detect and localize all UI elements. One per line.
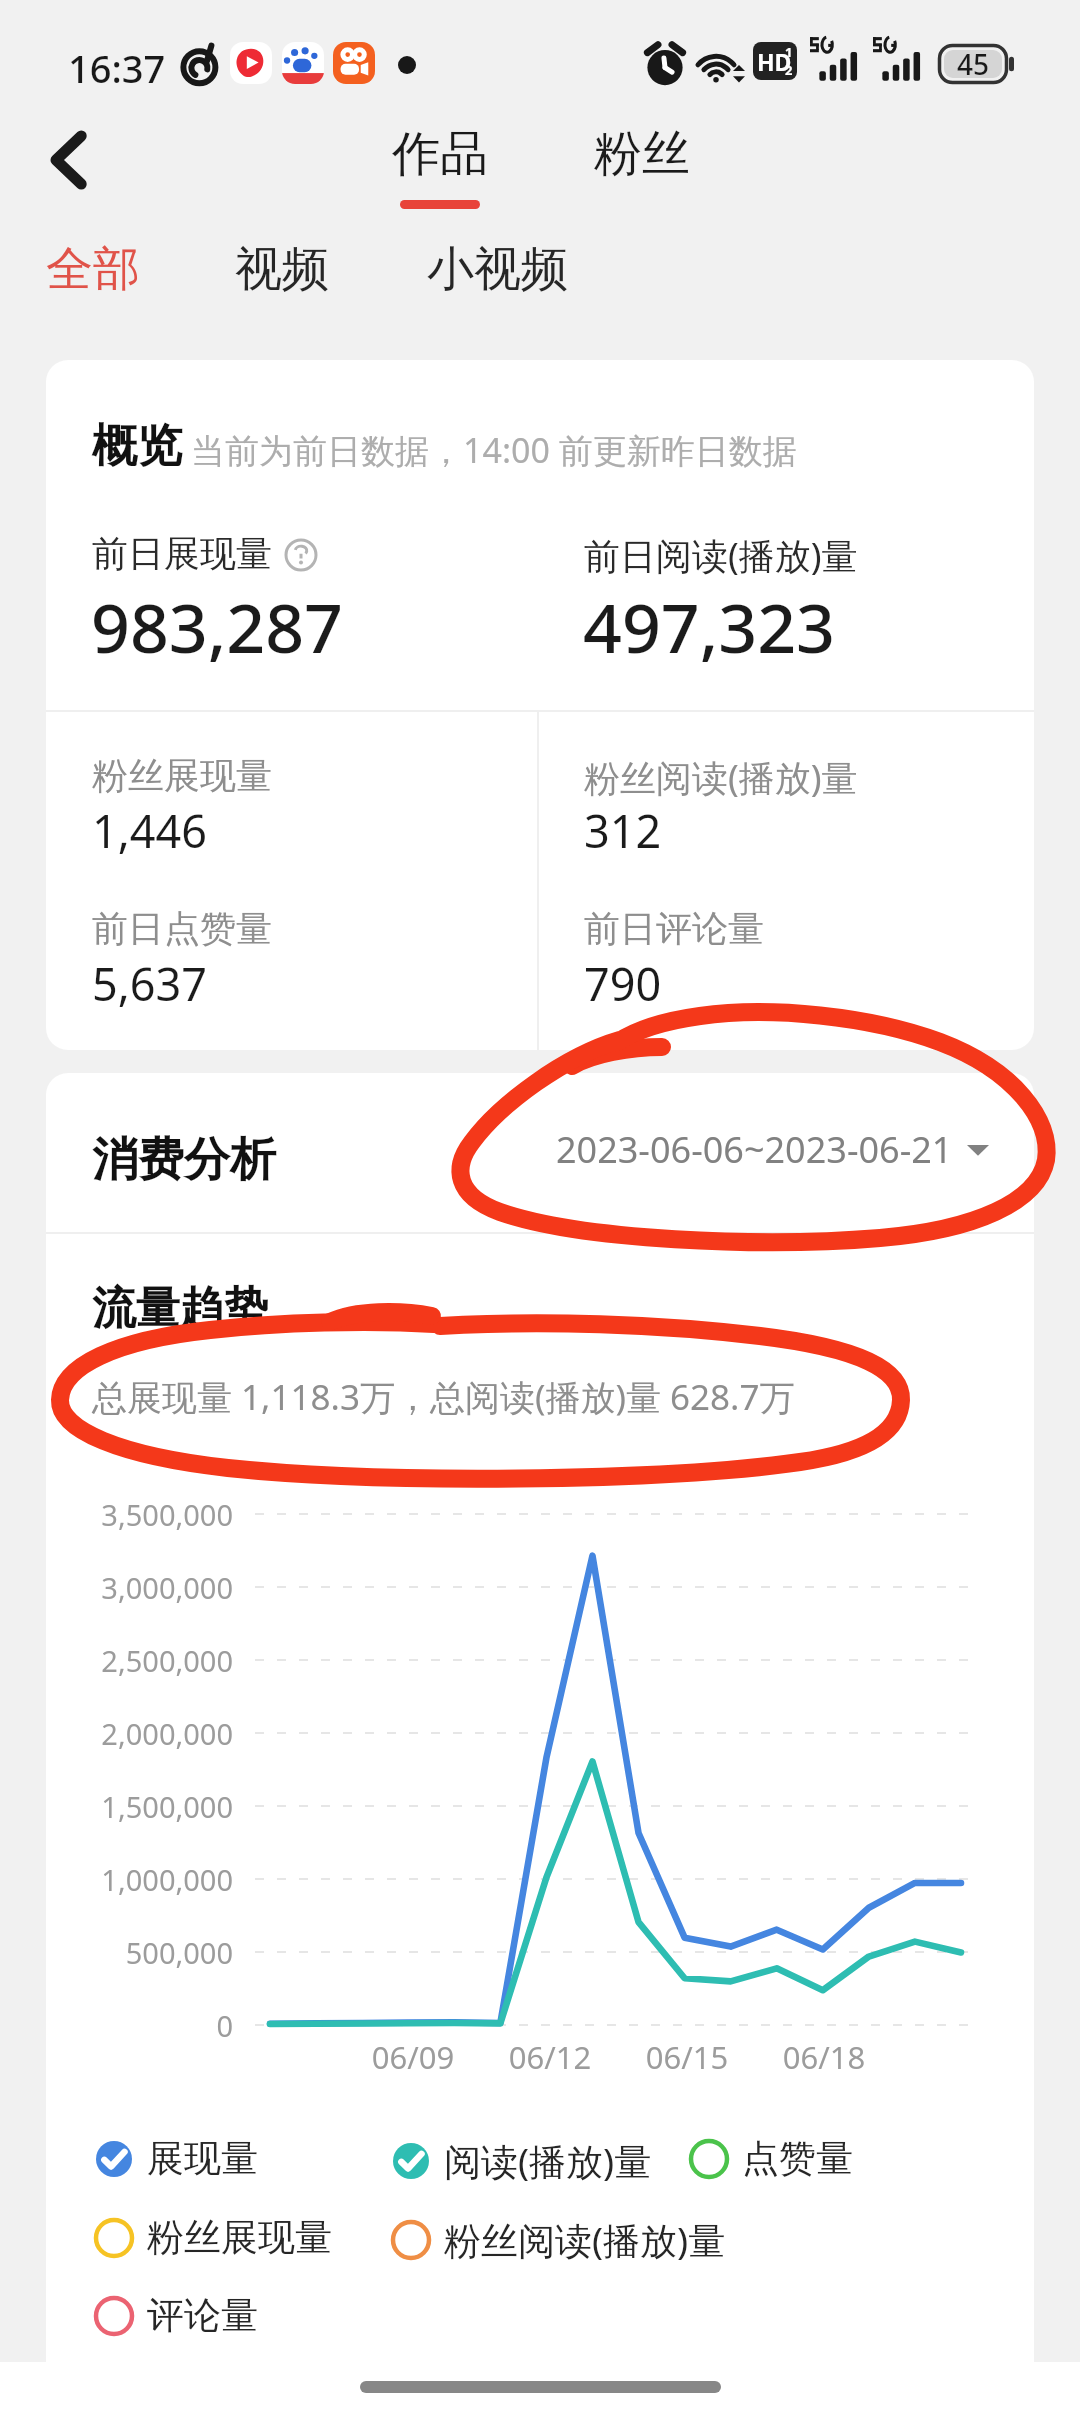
staticText: 当前为前日数据，14:00 前更新昨日数据 xyxy=(191,427,797,473)
button[interactable]: 视频 xyxy=(235,240,329,299)
button[interactable]: 阅读(播放)量 xyxy=(390,2135,652,2186)
staticText: 全部 xyxy=(46,240,140,299)
staticText: HD xyxy=(757,46,792,77)
button[interactable]: 粉丝展现量 xyxy=(93,2214,332,2261)
staticText: 983,287 xyxy=(91,580,343,673)
staticText: 展现量 xyxy=(147,2135,258,2182)
button[interactable]: Back xyxy=(38,128,102,192)
button[interactable]: 作品 xyxy=(390,124,490,224)
button[interactable]: 粉丝 xyxy=(592,124,692,194)
staticText: 总展现量 1,118.3万，总阅读(播放)量 628.7万 xyxy=(92,1373,795,1421)
staticText: 2,500,000 xyxy=(46,1641,233,1680)
staticText: 45 xyxy=(957,45,990,83)
staticText: 2,000,000 xyxy=(46,1714,233,1753)
staticText: 0 xyxy=(46,2006,233,2045)
staticText: 粉丝阅读(播放)量 xyxy=(584,753,858,802)
staticText: 粉丝阅读(播放)量 xyxy=(444,2214,726,2265)
staticText: 小视频 xyxy=(427,240,568,299)
staticText: 前日阅读(播放)量 xyxy=(584,531,858,580)
staticText: 06/09 xyxy=(353,2036,473,2078)
staticText: 粉丝展现量 xyxy=(147,2214,332,2261)
staticText: 前日展现量 xyxy=(92,531,272,576)
staticText: 作品 xyxy=(392,124,488,184)
staticText: 3,000,000 xyxy=(46,1568,233,1607)
button[interactable]: 粉丝阅读(播放)量 xyxy=(390,2214,726,2265)
staticText: 前日点赞量 xyxy=(92,906,272,951)
staticText: 评论量 xyxy=(147,2292,258,2339)
staticText: 312 xyxy=(584,800,662,861)
button[interactable]: 2023-06-06~2023-06-21 xyxy=(556,1125,989,1174)
button[interactable]: 全部 xyxy=(46,240,140,299)
staticText: 1,000,000 xyxy=(46,1860,233,1899)
staticText: 06/15 xyxy=(627,2036,747,2078)
staticText: 阅读(播放)量 xyxy=(444,2135,652,2186)
staticText: 粉丝 xyxy=(594,124,690,184)
staticText: 500,000 xyxy=(46,1933,233,1972)
staticText: 2 xyxy=(785,61,793,79)
staticText: 16:37 xyxy=(68,42,166,94)
staticText: 消费分析 xyxy=(92,1131,276,1189)
staticText: 前日评论量 xyxy=(584,906,764,951)
staticText: 5,637 xyxy=(92,953,208,1014)
staticText: 2023-06-06~2023-06-21 xyxy=(556,1125,953,1174)
staticText: 06/18 xyxy=(764,2036,884,2078)
staticText: 790 xyxy=(584,953,662,1014)
staticText: 1,500,000 xyxy=(46,1787,233,1826)
button[interactable]: 展现量 xyxy=(93,2135,258,2182)
staticText: 流量趋势 xyxy=(92,1281,268,1336)
staticText: 1 xyxy=(785,43,793,61)
button[interactable]: 小视频 xyxy=(427,240,568,299)
staticText: 1,446 xyxy=(92,800,208,861)
staticText: 粉丝展现量 xyxy=(92,753,272,798)
staticText: 视频 xyxy=(235,240,329,299)
button[interactable]: 评论量 xyxy=(93,2292,258,2339)
button[interactable]: 点赞量 xyxy=(688,2135,853,2182)
staticText: 3,500,000 xyxy=(46,1495,233,1534)
staticText: 497,323 xyxy=(583,580,835,673)
staticText: 概览 xyxy=(92,418,182,475)
staticText: 点赞量 xyxy=(742,2135,853,2182)
staticText: 06/12 xyxy=(490,2036,610,2078)
